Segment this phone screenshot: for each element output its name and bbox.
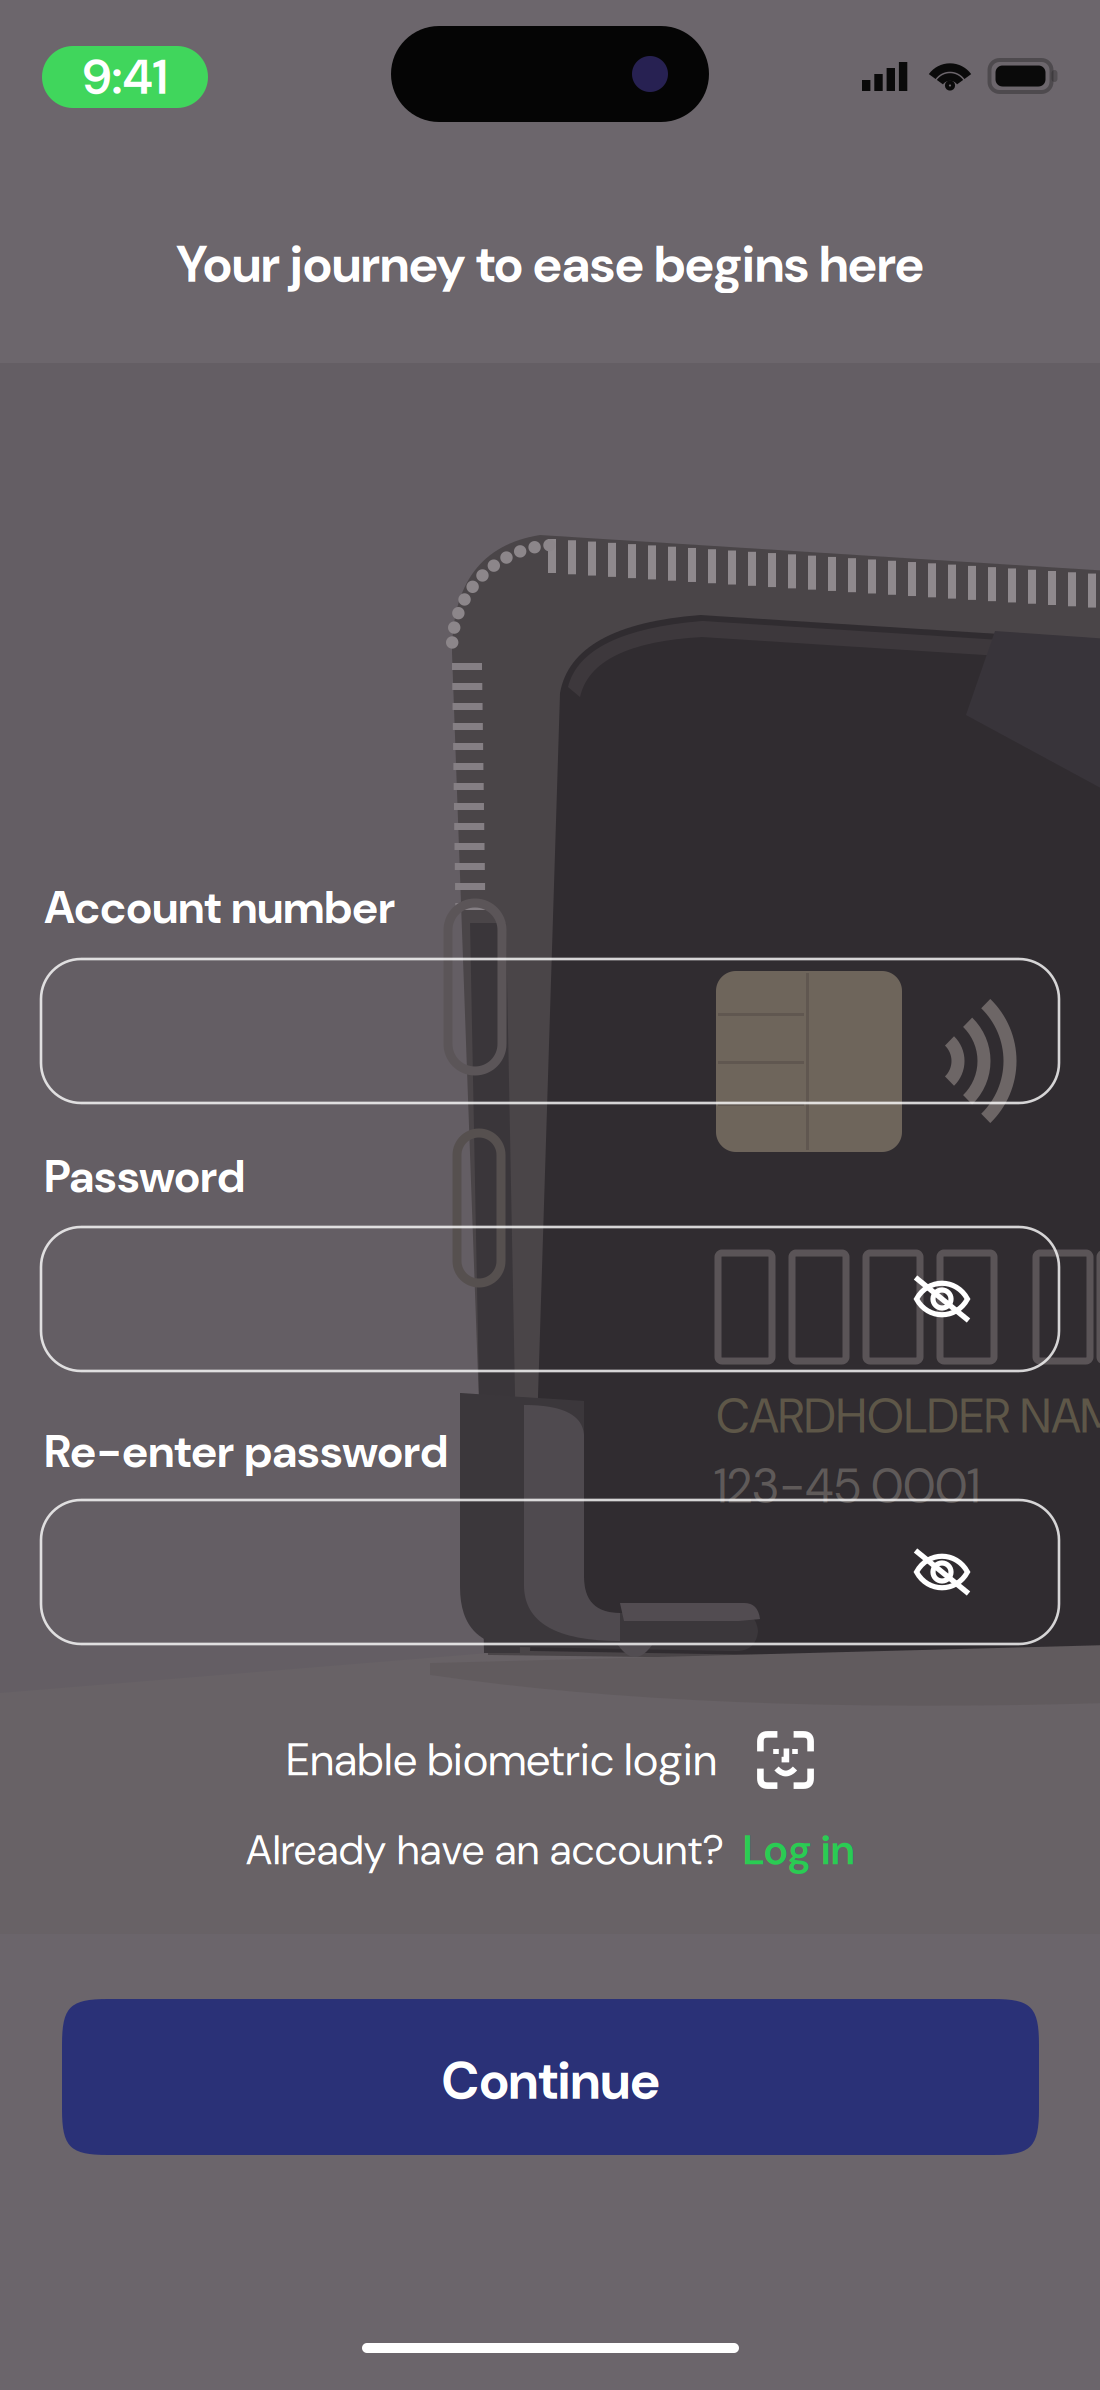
button[interactable] <box>41 959 1059 1103</box>
staticText: Continue <box>441 2047 659 2115</box>
staticText: Password <box>44 1147 245 1206</box>
button[interactable]: Enable biometric login <box>0 1729 1100 1791</box>
button[interactable] <box>41 1227 1059 1371</box>
staticText: Log in <box>724 1823 854 1877</box>
button[interactable]: Continue <box>62 1999 1039 2155</box>
staticText: Already have an account? <box>245 1823 724 1877</box>
staticText: Account number <box>44 878 395 937</box>
staticText: Enable biometric login <box>286 1731 717 1789</box>
staticText: CARDHOLDER NAME <box>716 1385 1100 1447</box>
button[interactable]: Already have an account? <box>0 1822 1100 1878</box>
button[interactable] <box>41 1500 1059 1644</box>
staticText: Your journey to ease begins here <box>176 231 924 297</box>
staticText: Re-enter password <box>44 1422 448 1481</box>
staticText: 123-45 0001 <box>714 1455 980 1517</box>
staticText: 9:41 <box>82 45 167 109</box>
